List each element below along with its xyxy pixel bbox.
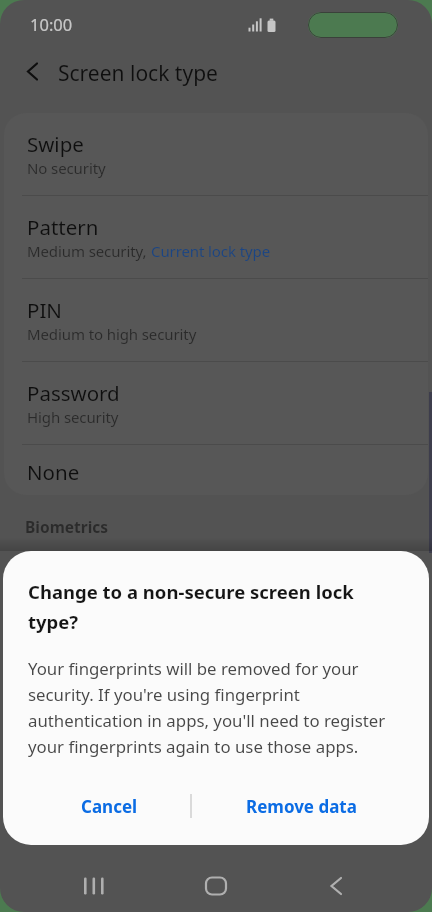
button[interactable] [78,870,114,902]
staticText: Biometrics [25,516,109,537]
staticText: No security [27,158,106,178]
staticText: PIN [27,296,62,324]
button[interactable]: PIN [4,279,428,361]
button[interactable] [16,55,50,89]
button[interactable] [198,870,234,902]
staticText: Cancel [81,795,138,818]
staticText: Pattern [27,213,99,241]
staticText: Password [27,379,120,407]
staticText: Swipe [27,130,84,158]
staticText: High security [27,407,119,427]
staticText: Medium to high security [27,324,197,344]
staticText: Your fingerprints will be removed for yo… [28,657,386,758]
button[interactable]: Swipe [4,113,428,195]
button[interactable]: None [4,445,428,495]
staticText: Remove data [246,795,357,818]
staticText: Change to a non-secure screen lock type? [28,579,354,634]
staticText: 10:00 [30,13,73,35]
button[interactable]: Cancel [61,786,157,826]
staticText: Medium security, [27,241,151,261]
button[interactable]: Remove data [241,786,361,826]
button[interactable]: Pattern [4,196,428,278]
staticText: Current lock type [151,241,270,261]
staticText: Screen lock type [58,59,218,88]
button[interactable] [318,870,354,902]
button[interactable]: Password [4,362,428,444]
staticText: None [27,458,80,486]
